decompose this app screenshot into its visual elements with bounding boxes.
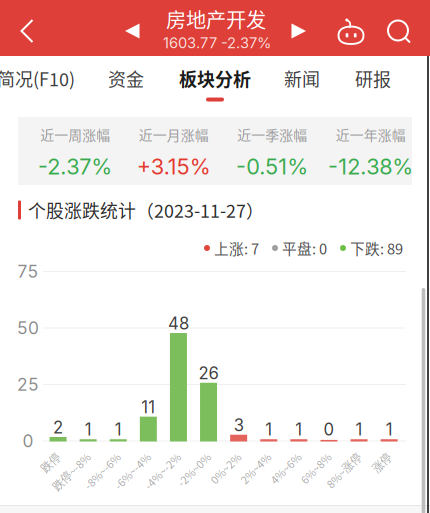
staticText: 跌停 — [32, 449, 54, 464]
staticText: 资金 — [108, 65, 144, 92]
staticText: 平盘: 0 — [282, 237, 327, 259]
staticText: 50 — [17, 317, 39, 338]
staticText: 研报 — [355, 65, 391, 92]
staticText: 1 — [265, 419, 272, 439]
staticText: -8%~-6% — [68, 449, 114, 464]
staticText: 0%~2% — [197, 449, 235, 464]
staticText: 8%~涨停 — [311, 449, 355, 464]
button[interactable]: AI assistant — [332, 7, 370, 55]
staticText: 11 — [141, 397, 155, 417]
staticText: 2 — [53, 417, 63, 438]
button[interactable]: Next sector — [283, 16, 313, 46]
staticText: -2.37% — [38, 153, 112, 180]
staticText: 简况(F10) — [0, 65, 75, 92]
staticText: 3 — [234, 415, 244, 435]
staticText: 房地产开发 — [166, 4, 266, 34]
staticText: 近一年涨幅 — [336, 124, 406, 145]
staticText: 2%~4% — [227, 449, 265, 464]
staticText: 48 — [168, 313, 189, 334]
staticText: 涨停 — [363, 449, 385, 464]
staticText: 25 — [17, 374, 39, 395]
staticText: -0.51% — [236, 153, 308, 180]
staticText: 0 — [323, 419, 334, 439]
button[interactable]: 资金 — [86, 56, 166, 104]
staticText: 26 — [199, 363, 219, 383]
button[interactable]: 简况(F10) — [0, 56, 81, 104]
staticText: 0 — [22, 430, 33, 451]
staticText: 近一季涨幅 — [237, 124, 307, 145]
staticText: 1 — [386, 419, 393, 439]
staticText: 新闻 — [284, 65, 320, 92]
staticText: -6%~-4% — [98, 449, 144, 464]
staticText: 个股涨跌统计（2023-11-27） — [28, 197, 264, 223]
staticText: 板块分析 — [179, 65, 251, 92]
staticText: 1 — [356, 419, 363, 439]
button[interactable]: 新闻 — [262, 56, 342, 104]
staticText: 1 — [115, 419, 122, 439]
button[interactable]: 研报 — [335, 56, 411, 104]
staticText: 1 — [85, 419, 92, 439]
staticText: 1 — [295, 419, 302, 439]
staticText: 4%~6% — [257, 449, 295, 464]
staticText: 近一周涨幅 — [40, 124, 110, 145]
staticText: 上涨: 7 — [214, 237, 259, 259]
staticText: 近一月涨幅 — [139, 124, 209, 145]
button[interactable]: 板块分析 — [171, 56, 259, 104]
staticText: -2%~0% — [163, 449, 205, 464]
staticText: 75 — [17, 261, 38, 282]
staticText: +3.15% — [137, 153, 211, 180]
staticText: 跌停~-8% — [36, 449, 84, 464]
staticText: -4%~-2% — [128, 449, 174, 464]
staticText: 6%~8% — [287, 449, 325, 464]
staticText: -12.38% — [328, 153, 413, 180]
staticText: 1603.77 -2.37% — [163, 34, 271, 52]
button[interactable]: Back — [16, 15, 48, 59]
staticText: 下跌: 89 — [350, 237, 403, 259]
button[interactable]: Previous sector — [117, 16, 147, 46]
button[interactable]: Search — [382, 10, 418, 54]
